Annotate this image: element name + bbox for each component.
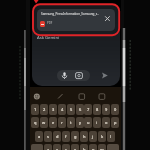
button[interactable] <box>32 92 42 102</box>
staticText: 9 <box>105 107 108 112</box>
staticText: 4 <box>61 107 64 112</box>
button[interactable]: v <box>71 144 79 150</box>
staticText: f <box>65 134 67 139</box>
staticText: 7 <box>87 107 90 112</box>
staticText: w <box>42 120 46 125</box>
button[interactable]: 9 <box>102 104 110 115</box>
staticText: x <box>56 147 59 150</box>
button[interactable] <box>31 144 43 150</box>
button[interactable]: 8 <box>93 104 101 115</box>
staticText: 3 <box>52 107 55 112</box>
staticText: 5 <box>70 107 73 112</box>
button[interactable] <box>37 9 115 31</box>
button[interactable]: 2 <box>40 104 48 115</box>
button[interactable] <box>57 70 90 81</box>
staticText: l <box>110 134 112 139</box>
button[interactable]: h <box>80 131 88 142</box>
button[interactable]: j <box>89 131 97 142</box>
staticText: m <box>100 147 104 150</box>
staticText: PDF <box>47 21 53 25</box>
staticText: 0 <box>114 107 117 112</box>
button[interactable]: p <box>111 117 119 128</box>
button[interactable]: a <box>35 131 43 142</box>
staticText: j <box>92 134 94 139</box>
button[interactable]: g <box>71 131 79 142</box>
staticText: b <box>83 147 86 150</box>
staticText: 6 <box>79 107 82 112</box>
button[interactable]: 1 <box>31 104 39 115</box>
staticText: q <box>34 120 37 125</box>
button[interactable]: y <box>76 117 84 128</box>
button[interactable]: c <box>62 144 70 150</box>
staticText: c <box>65 147 67 150</box>
staticText: t <box>70 120 72 125</box>
button[interactable]: n <box>89 144 97 150</box>
button[interactable]: 7 <box>84 104 92 115</box>
button[interactable]: m <box>98 144 106 150</box>
button[interactable]: i <box>93 117 101 128</box>
staticText: 2 <box>43 107 46 112</box>
button[interactable] <box>99 70 110 81</box>
button[interactable]: s <box>44 131 52 142</box>
button[interactable]: 3 <box>49 104 57 115</box>
staticText: p <box>114 120 117 125</box>
button[interactable]: 5 <box>67 104 75 115</box>
staticText: v <box>74 147 77 150</box>
staticText: z <box>47 147 49 150</box>
staticText: a <box>38 134 41 139</box>
button[interactable]: q <box>31 117 39 128</box>
button[interactable]: f <box>62 131 70 142</box>
button[interactable] <box>75 92 85 102</box>
button[interactable]: k <box>98 131 106 142</box>
staticText: g <box>74 134 77 139</box>
staticText: s <box>47 134 49 139</box>
button[interactable] <box>103 14 112 23</box>
button[interactable]: z <box>44 144 52 150</box>
button[interactable]: t <box>67 117 75 128</box>
staticText: d <box>56 134 59 139</box>
staticText: y <box>79 120 82 125</box>
button[interactable] <box>54 92 64 102</box>
button[interactable]: 4 <box>58 104 66 115</box>
button[interactable]: w <box>40 117 48 128</box>
button[interactable] <box>34 32 84 43</box>
button[interactable] <box>95 92 105 102</box>
staticText: r <box>61 120 63 125</box>
button[interactable] <box>107 144 119 150</box>
button[interactable]: r <box>58 117 66 128</box>
staticText: u <box>87 120 90 125</box>
staticText: 8 <box>96 107 99 112</box>
staticText: Ask Gemini <box>37 35 60 41</box>
button[interactable]: l <box>107 131 115 142</box>
button[interactable]: 6 <box>76 104 84 115</box>
staticText: e <box>52 120 55 125</box>
staticText: o <box>105 120 108 125</box>
button[interactable]: d <box>53 131 61 142</box>
staticText: n <box>92 147 95 150</box>
staticText: k <box>101 134 104 139</box>
button[interactable]: e <box>49 117 57 128</box>
button[interactable]: 0 <box>111 104 119 115</box>
button[interactable]: x <box>53 144 61 150</box>
staticText: Samsung_PressInformation_Samsung_s.. <box>41 12 99 16</box>
staticText: 1 <box>34 107 37 112</box>
button[interactable]: o <box>102 117 110 128</box>
button[interactable]: u <box>84 117 92 128</box>
staticText: i <box>96 120 98 125</box>
button[interactable]: b <box>80 144 88 150</box>
staticText: h <box>83 134 86 139</box>
